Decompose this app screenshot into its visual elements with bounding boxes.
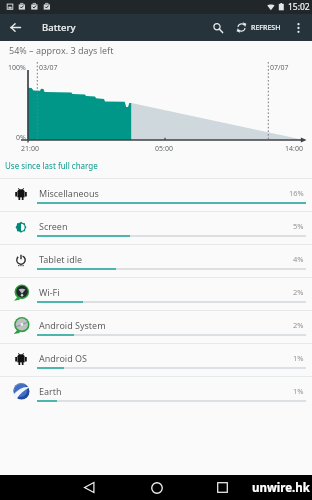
staticText: 54% – approx. 3 days left (9, 44, 114, 56)
staticText: 05:00 (155, 144, 173, 154)
staticText: 14:00 (285, 144, 303, 154)
staticText: REFRESH (251, 23, 281, 33)
staticText: 03/07 (39, 63, 58, 73)
staticText: 2% (293, 287, 304, 297)
button[interactable]: Screen (0, 211, 312, 244)
staticText: Miscellaneous (39, 187, 99, 199)
button[interactable]: REFRESH (233, 14, 285, 41)
button[interactable]: Navigate up (2, 14, 29, 41)
staticText: Screen (39, 220, 68, 232)
staticText: 16% (289, 188, 304, 198)
staticText: unwire.hk (252, 480, 310, 496)
button[interactable]: Android System (0, 310, 312, 343)
staticText: 15:02 (288, 1, 310, 13)
staticText: Tablet idle (39, 253, 83, 265)
button[interactable]: Search (206, 16, 230, 40)
staticText: 21:00 (21, 144, 39, 154)
staticText: 4% (293, 254, 304, 264)
staticText: 1% (293, 353, 304, 363)
button[interactable]: Android OS (0, 343, 312, 376)
button[interactable]: Earth (0, 376, 312, 409)
staticText: 07/07 (270, 63, 289, 73)
staticText: Wi-Fi (39, 286, 60, 298)
button[interactable]: Recent apps (210, 475, 235, 500)
staticText: Use since last full charge (5, 160, 98, 171)
staticText: 100% (8, 63, 26, 73)
staticText: 1% (293, 386, 304, 396)
button[interactable]: Miscellaneous (0, 178, 312, 211)
button[interactable]: Home (144, 475, 169, 500)
staticText: Battery (42, 21, 76, 34)
button[interactable]: Wi-Fi (0, 277, 312, 310)
staticText: 2% (293, 320, 304, 330)
button[interactable]: More options (287, 17, 309, 39)
staticText: Android System (39, 319, 106, 331)
staticText: 5% (293, 221, 304, 231)
staticText: Earth (39, 385, 62, 397)
button[interactable]: Back (77, 475, 102, 500)
staticText: Android OS (39, 352, 87, 364)
staticText: 0% (16, 133, 26, 143)
button[interactable]: Tablet idle (0, 244, 312, 277)
